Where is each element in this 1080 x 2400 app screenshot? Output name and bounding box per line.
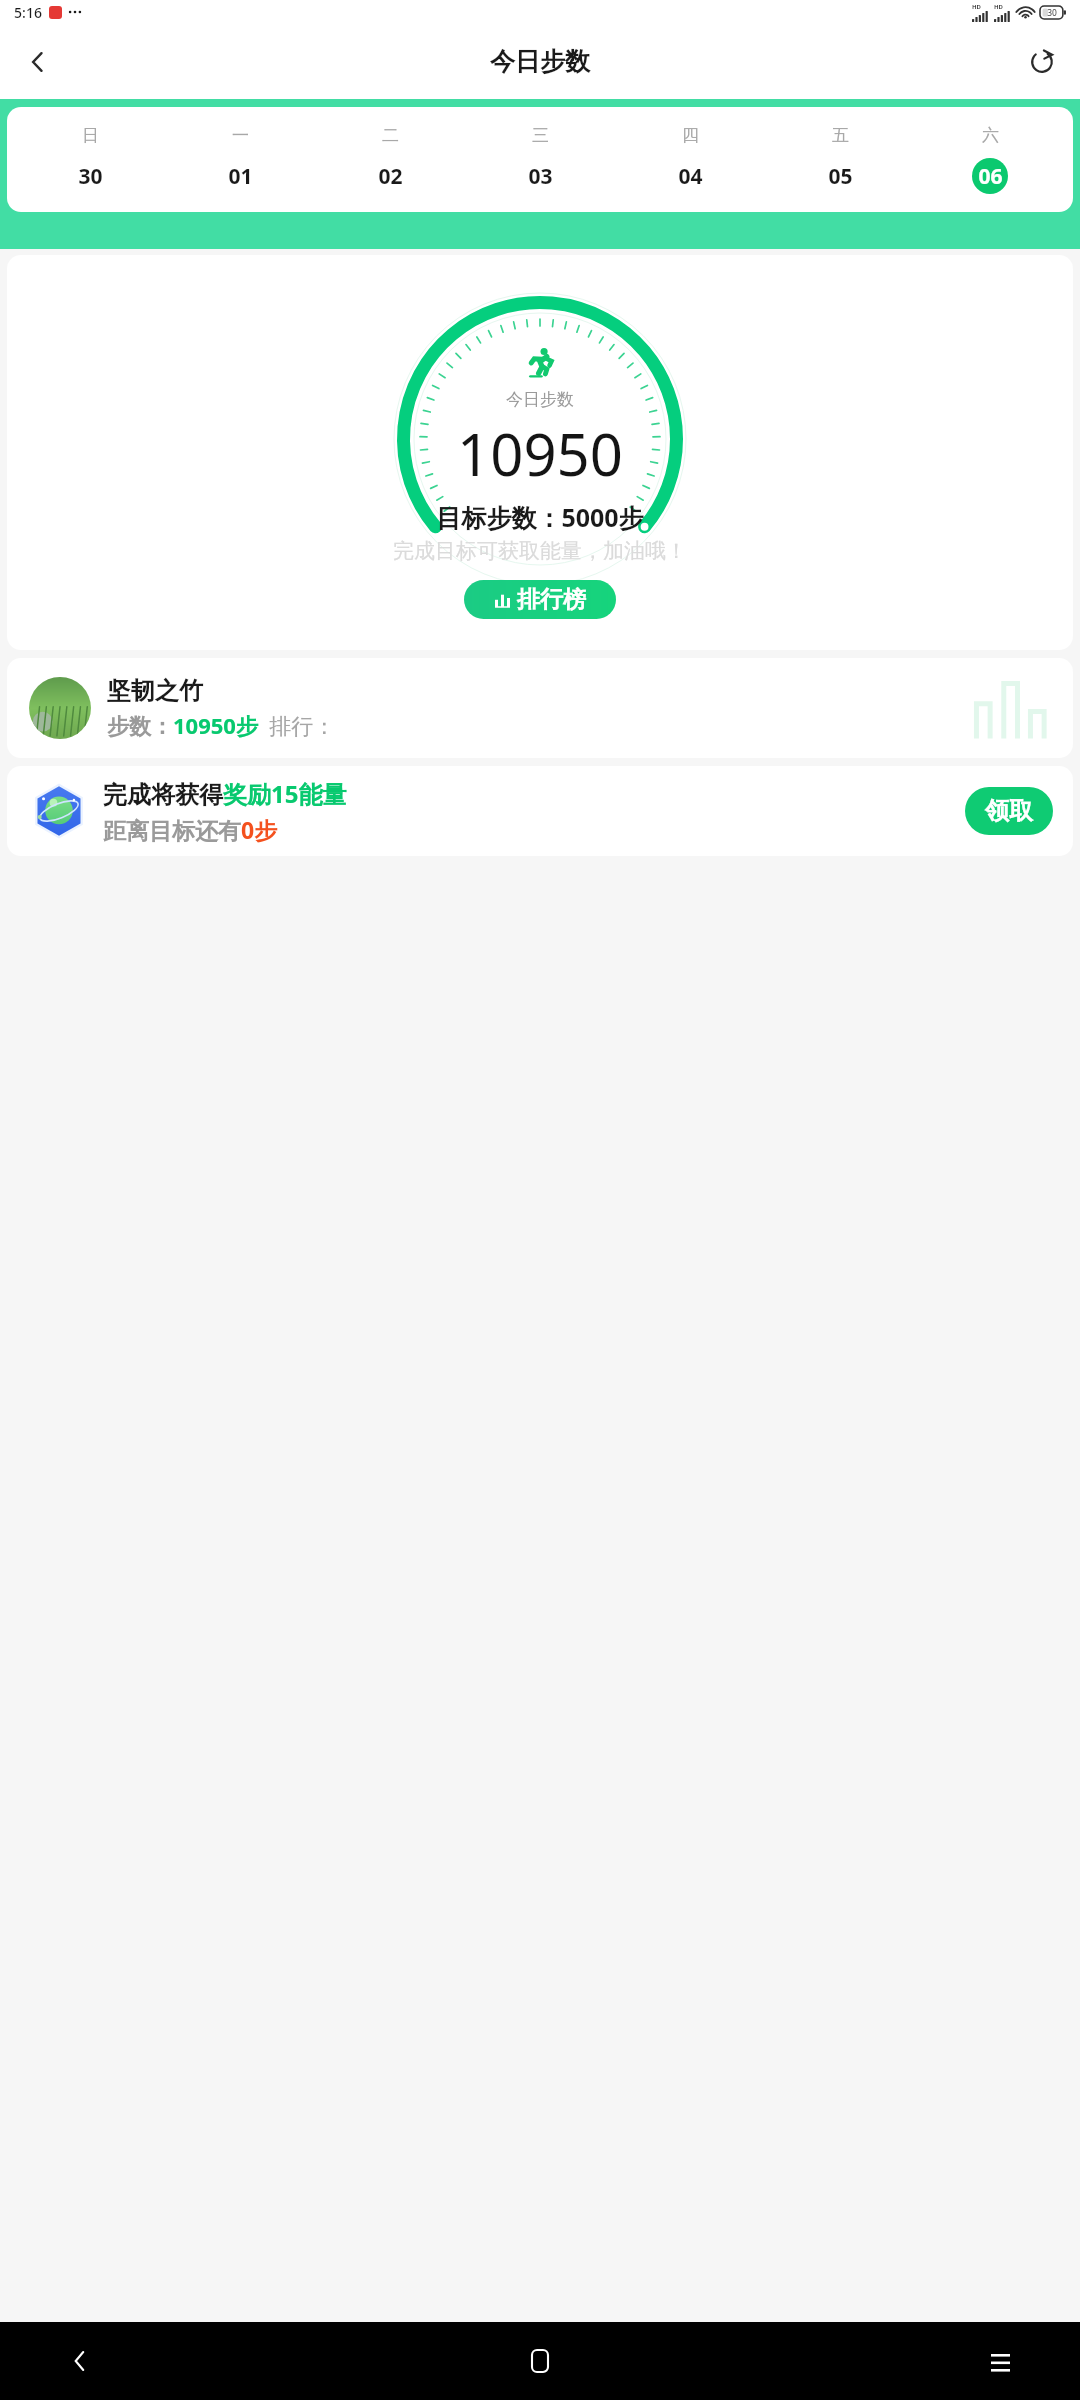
staticText: 5:16 [14, 3, 42, 22]
staticText: 目标步数：5000步 [436, 500, 644, 534]
staticText: 距离目标还有0步 [103, 814, 278, 845]
staticText: 05 [828, 162, 853, 191]
staticText: 二 [382, 125, 399, 146]
button[interactable]: 坚韧之竹 [7, 658, 1073, 758]
staticText: 六 [982, 125, 999, 146]
staticText: HD [972, 3, 981, 11]
button[interactable]: 04 [672, 158, 708, 194]
button[interactable]: 领取 [965, 787, 1053, 835]
button[interactable]: 02 [372, 158, 408, 194]
staticText: 一 [232, 125, 249, 146]
staticText: HD [994, 3, 1003, 11]
staticText: 日 [82, 125, 99, 146]
button[interactable]: 排行榜 [464, 580, 616, 619]
staticText: 02 [378, 162, 403, 191]
button[interactable]: Back [12, 36, 64, 88]
staticText: 坚韧之竹 [107, 676, 203, 706]
button[interactable]: Home [512, 2333, 568, 2389]
button[interactable]: 01 [222, 158, 258, 194]
staticText: 今日步数 [506, 389, 574, 410]
staticText: 四 [682, 125, 699, 146]
staticText: 完成将获得奖励15能量 [103, 777, 347, 810]
staticText: 30 [1047, 7, 1057, 19]
staticText: 10950 [457, 414, 623, 493]
button[interactable]: 03 [522, 158, 558, 194]
staticText: 排行榜 [517, 585, 586, 614]
staticText: 步数：10950步 排行： [107, 710, 336, 740]
staticText: 三 [532, 125, 549, 146]
staticText: 今日步数 [490, 46, 590, 77]
staticText: 30 [78, 162, 103, 191]
staticText: 04 [678, 162, 703, 191]
button[interactable]: Back [52, 2333, 108, 2389]
button[interactable]: 30 [72, 158, 108, 194]
staticText: 五 [832, 125, 849, 146]
staticText: 03 [528, 162, 553, 191]
button[interactable]: 05 [822, 158, 858, 194]
button[interactable]: Menu [972, 2333, 1028, 2389]
staticText: 01 [228, 162, 253, 191]
button[interactable]: Share [1018, 38, 1066, 86]
staticText: 06 [978, 162, 1003, 191]
button[interactable]: 06 [972, 158, 1008, 194]
staticText: 完成目标可获取能量，加油哦！ [393, 538, 687, 564]
staticText: 领取 [985, 796, 1033, 826]
